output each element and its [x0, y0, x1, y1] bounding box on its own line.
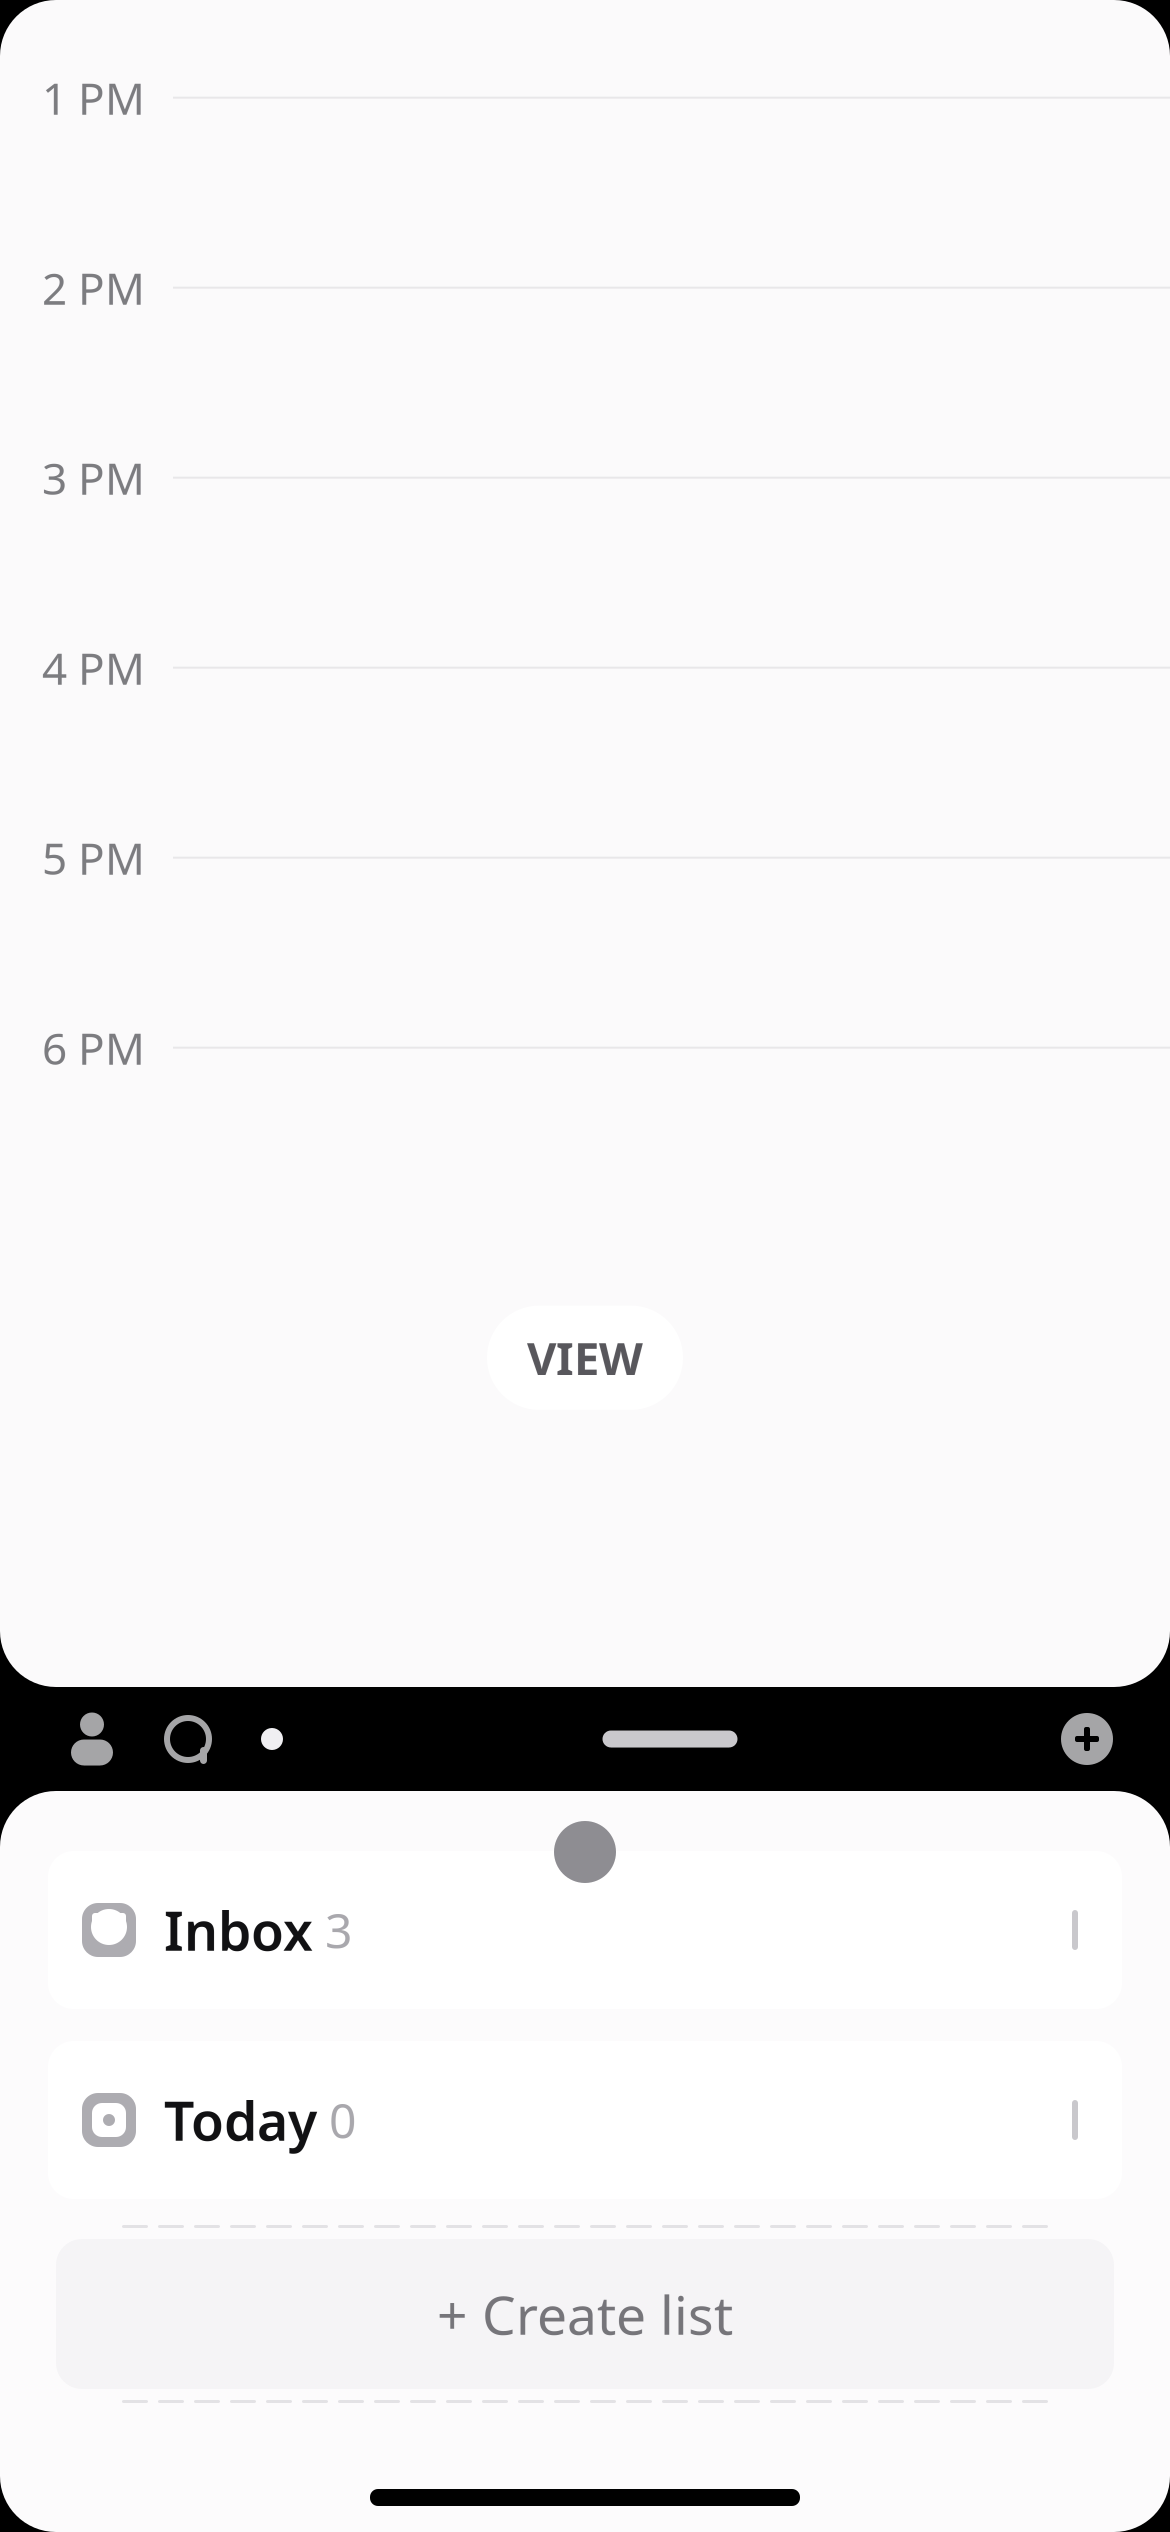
button[interactable]: + Create list	[56, 2239, 1114, 2389]
staticText: VIEW	[527, 1328, 643, 1388]
button[interactable]: Search	[140, 1687, 236, 1791]
staticText: 1 PM	[42, 68, 145, 127]
staticText: 6 PM	[42, 1018, 145, 1077]
staticText: 5 PM	[42, 828, 145, 887]
button[interactable]: VIEW	[487, 1306, 683, 1410]
button[interactable]: Add	[1032, 1687, 1142, 1791]
staticText: 0	[329, 2088, 356, 2152]
staticText: 4 PM	[42, 638, 145, 697]
staticText: Today	[164, 2085, 317, 2155]
button[interactable]: Today	[48, 2041, 1122, 2199]
button[interactable]: Inbox	[48, 1851, 1122, 2009]
button[interactable]: More	[236, 1687, 308, 1791]
staticText: + Create list	[437, 2279, 733, 2349]
staticText: 3 PM	[42, 448, 145, 507]
staticText: 3	[325, 1898, 352, 1962]
button[interactable]: Profile	[44, 1687, 140, 1791]
staticText: 2 PM	[42, 258, 145, 317]
staticText: Inbox	[164, 1895, 313, 1965]
